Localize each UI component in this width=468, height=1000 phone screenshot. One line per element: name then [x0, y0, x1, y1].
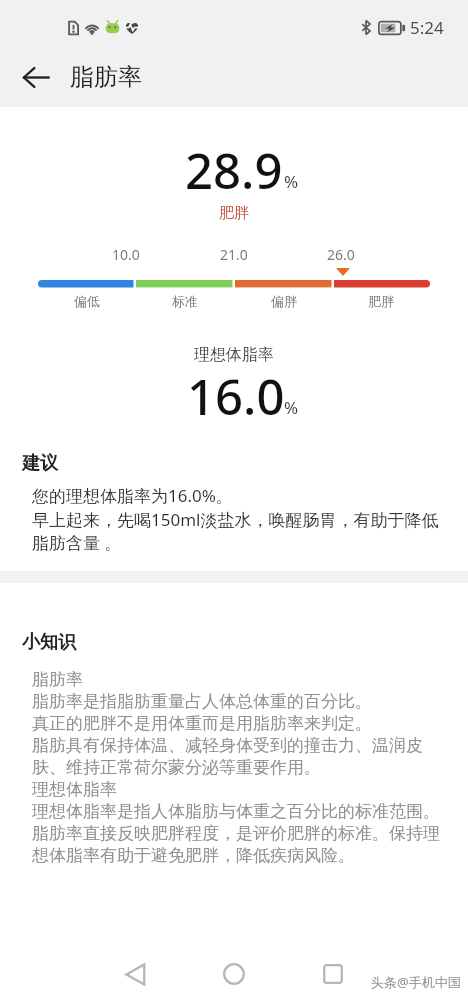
- button[interactable]: Home: [210, 950, 258, 998]
- staticText: 标准: [172, 293, 198, 309]
- staticText: %: [284, 170, 299, 193]
- staticText: 5:24: [410, 16, 444, 39]
- staticText: 脂肪率: [70, 62, 142, 92]
- staticText: 10.0: [112, 245, 140, 264]
- staticText: 28.9: [185, 137, 283, 204]
- staticText: 小知识: [22, 631, 76, 654]
- staticText: 您的理想体脂率为16.0%。 早上起来，先喝150ml淡盐水，唤醒肠胃，有助于降…: [32, 484, 439, 554]
- staticText: 肥胖: [368, 293, 394, 309]
- button[interactable]: Recents: [309, 950, 357, 998]
- staticText: 头条@手机中国: [371, 973, 461, 991]
- staticText: 16.0: [187, 363, 285, 430]
- staticText: 建议: [22, 452, 58, 475]
- button[interactable]: Back: [10, 51, 62, 103]
- staticText: %: [284, 396, 299, 419]
- staticText: 偏低: [74, 293, 100, 309]
- staticText: 21.0: [220, 245, 248, 264]
- staticText: 肥胖: [219, 204, 249, 223]
- staticText: 26.0: [327, 245, 355, 264]
- staticText: 偏胖: [271, 293, 297, 309]
- staticText: 脂肪率 脂肪率是指脂肪重量占人体总体重的百分比。 真正的肥胖不是用体重而是用脂肪…: [32, 669, 440, 866]
- staticText: 理想体脂率: [194, 345, 274, 365]
- button[interactable]: Back: [111, 950, 159, 998]
